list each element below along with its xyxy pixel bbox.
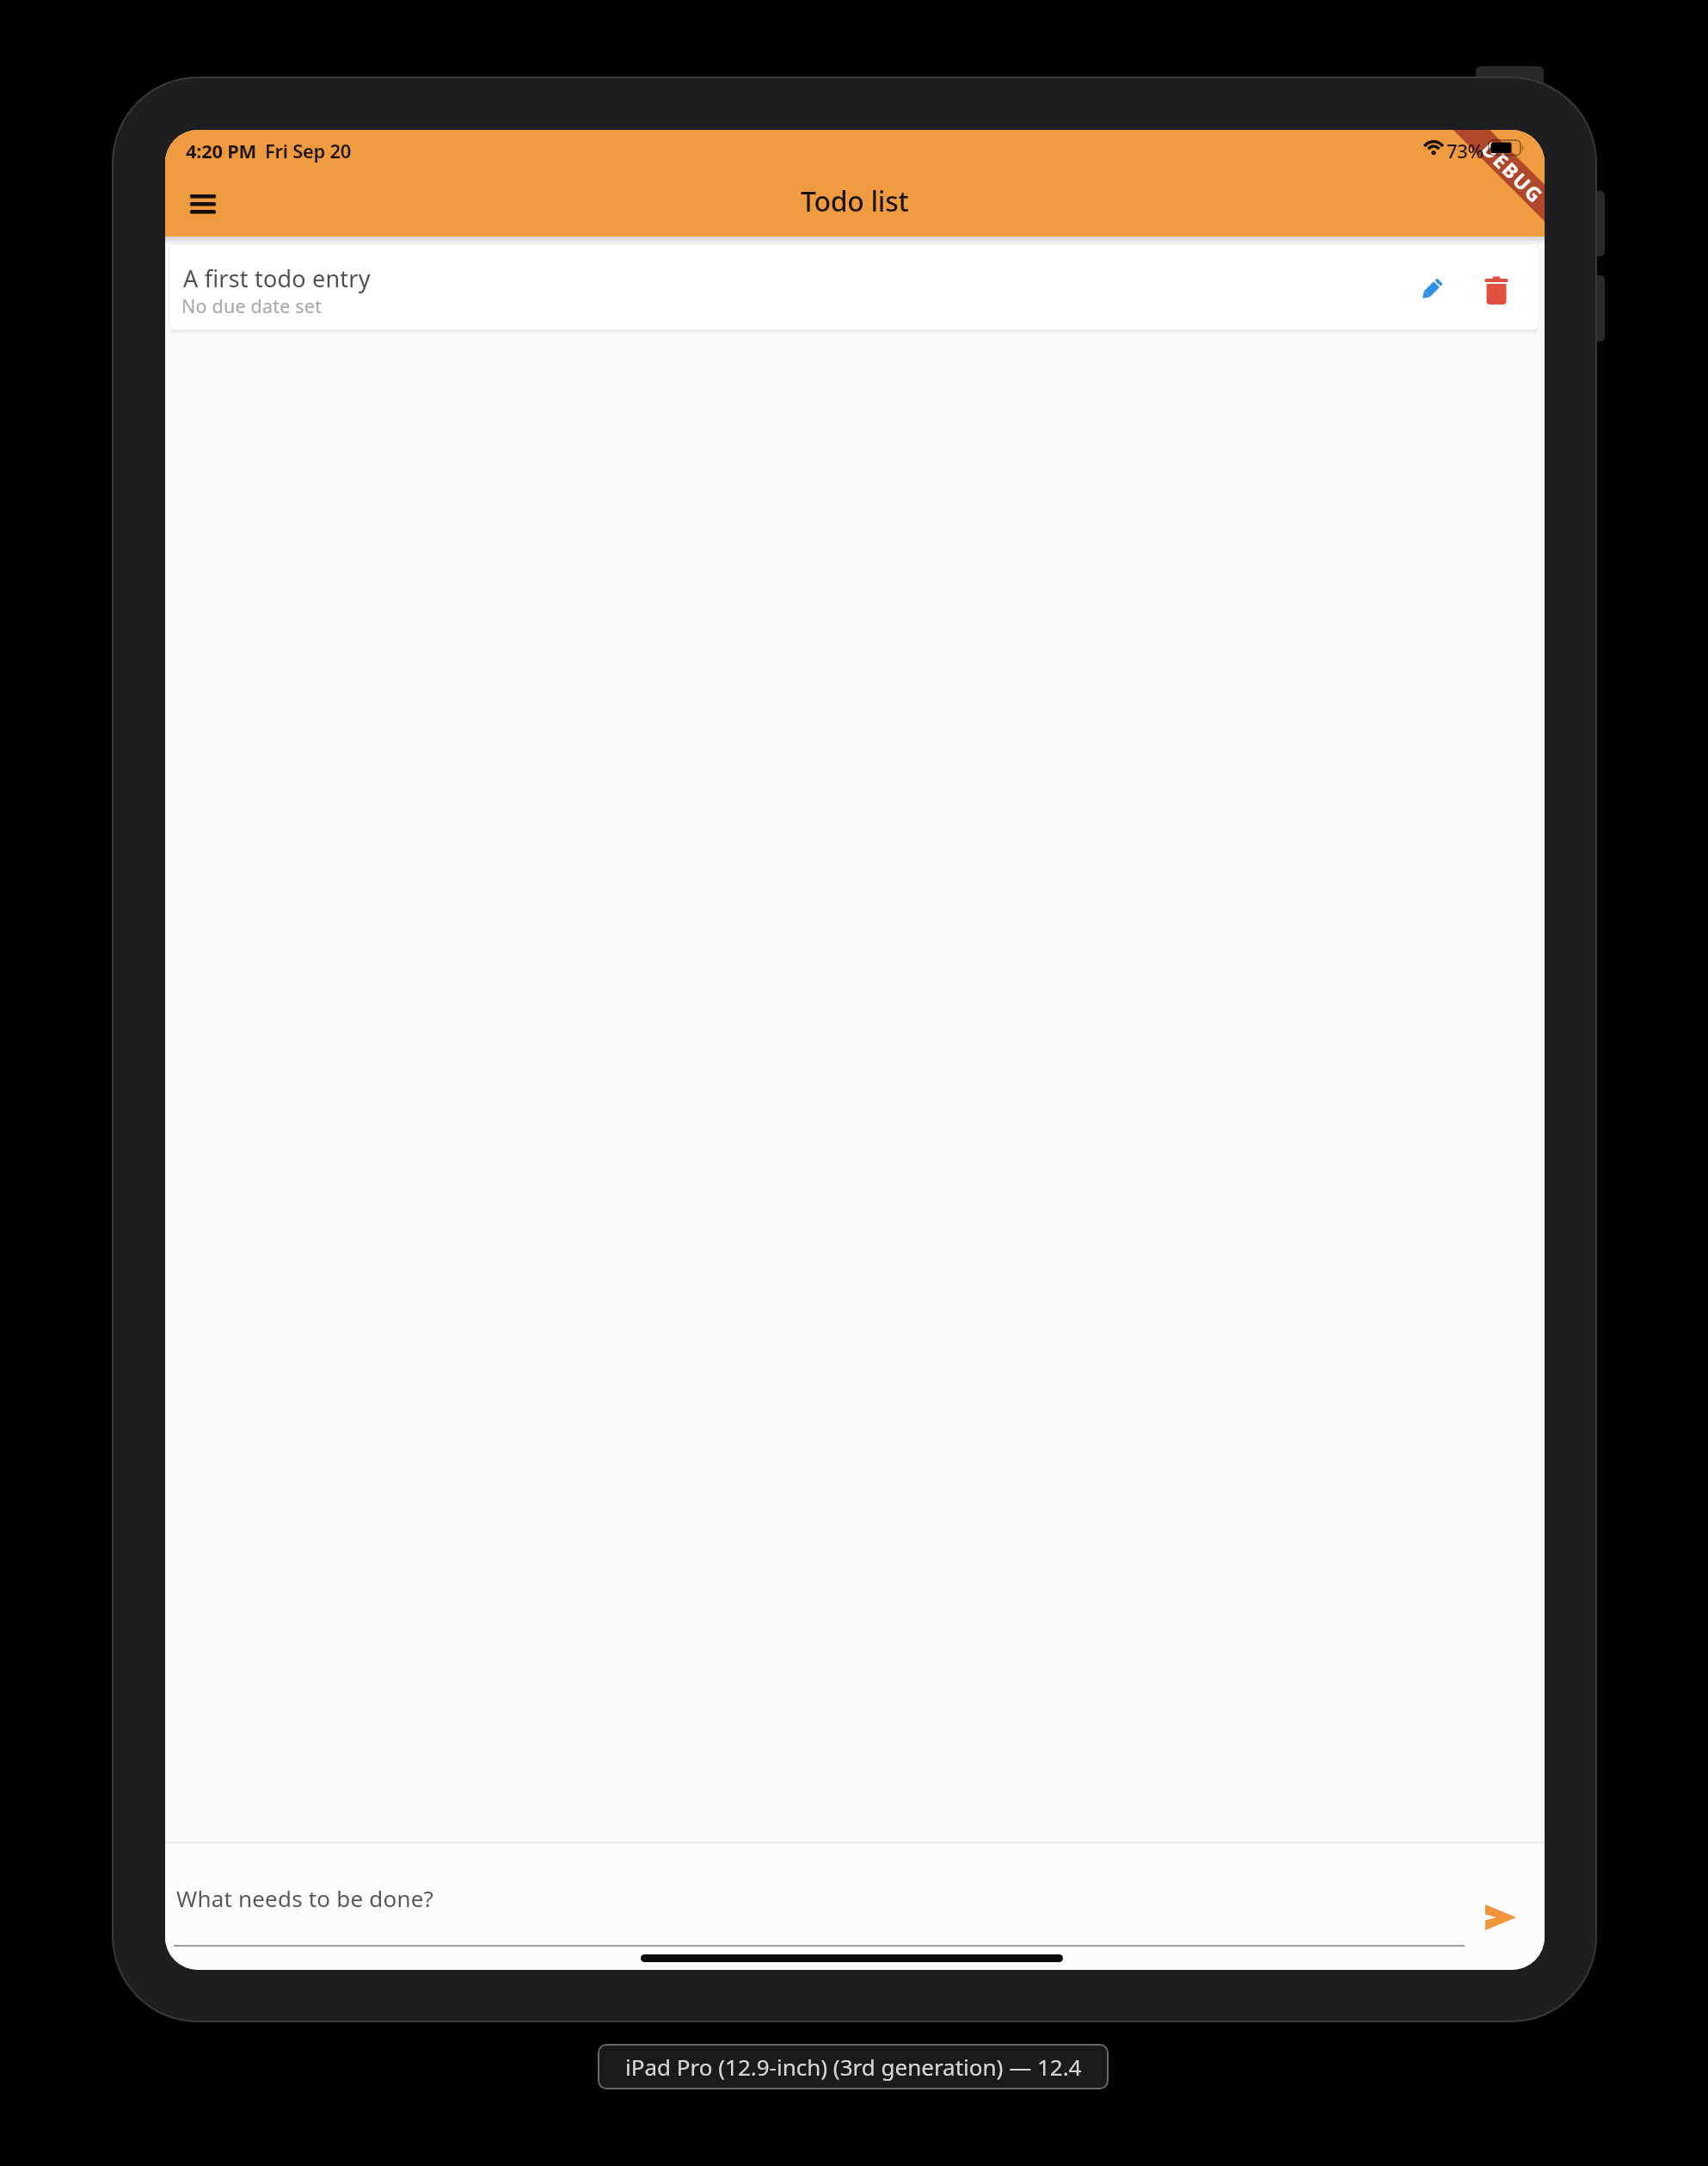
- staticText: No due date set: [181, 293, 323, 318]
- button[interactable]: [1477, 271, 1516, 311]
- button[interactable]: [183, 187, 223, 221]
- staticText: Fri Sep 20: [265, 138, 351, 163]
- staticText: 73%: [1447, 138, 1484, 163]
- staticText: A first todo entry: [183, 262, 371, 294]
- button[interactable]: [1410, 271, 1450, 311]
- staticText: iPad Pro (12.9-inch) (3rd generation) — …: [625, 2052, 1082, 2082]
- staticText: Todo list: [801, 182, 909, 220]
- button[interactable]: [1481, 1898, 1521, 1937]
- staticText: 4:20 PM: [186, 138, 256, 163]
- button[interactable]: A first todo entry: [169, 243, 1539, 330]
- staticText: DEBUG: [1477, 136, 1545, 209]
- staticText: What needs to be done?: [176, 1883, 434, 1913]
